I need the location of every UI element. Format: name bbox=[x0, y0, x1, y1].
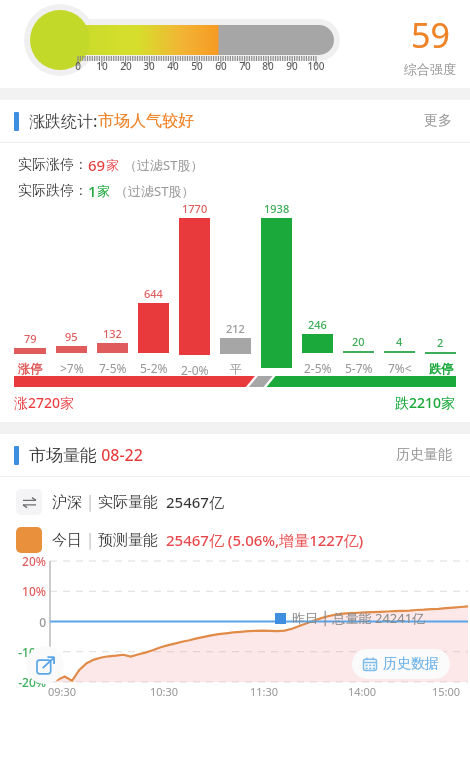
staticText: 08-22 bbox=[97, 444, 143, 466]
staticText: 25467亿 (5.06%,增量1227亿) bbox=[166, 530, 364, 550]
staticText: 历史数据 bbox=[383, 655, 439, 673]
staticText: 2-5% bbox=[304, 360, 332, 376]
staticText: 2-0% bbox=[181, 362, 209, 376]
staticText: 90 bbox=[281, 59, 303, 73]
staticText: 涨停 bbox=[18, 361, 42, 376]
staticText: 历史量能 bbox=[396, 446, 452, 464]
staticText: 1 bbox=[88, 181, 97, 201]
staticText: 100 bbox=[305, 59, 327, 73]
staticText: 79 bbox=[24, 331, 37, 346]
staticText: 家 bbox=[106, 157, 119, 173]
staticText: 涨跌统计: bbox=[29, 110, 98, 132]
staticText: │ bbox=[82, 531, 98, 550]
staticText: 昨日 │ 总量能 24241亿 bbox=[292, 609, 426, 627]
staticText: 综合强度 bbox=[404, 61, 456, 77]
staticText: （过滤ST股） bbox=[115, 182, 195, 200]
button[interactable]: 历史量能 bbox=[392, 442, 456, 468]
staticText: 60 bbox=[210, 59, 232, 73]
staticText: 1938 bbox=[264, 201, 290, 216]
staticText: 5-2% bbox=[140, 360, 168, 376]
staticText: 70 bbox=[234, 59, 256, 73]
staticText: 246 bbox=[308, 317, 327, 332]
staticText: 20% bbox=[2, 553, 46, 569]
button[interactable]: 历史数据 bbox=[352, 649, 450, 679]
staticText: 14:00 bbox=[348, 684, 377, 699]
staticText: 沪深 bbox=[52, 493, 82, 512]
staticText: 预测量能 bbox=[98, 531, 158, 550]
staticText: 平 bbox=[230, 361, 242, 376]
staticText: 0 bbox=[2, 614, 46, 630]
staticText: 今日 bbox=[52, 531, 82, 550]
staticText: 69 bbox=[88, 155, 106, 175]
staticText: 59 bbox=[411, 12, 450, 58]
staticText: 80 bbox=[257, 59, 279, 73]
staticText: 0 bbox=[67, 59, 89, 73]
staticText: 4 bbox=[396, 334, 403, 349]
button[interactable]: 切换市场 bbox=[16, 489, 42, 515]
staticText: 50 bbox=[186, 59, 208, 73]
staticText: 家 bbox=[97, 183, 110, 199]
staticText: 市场量能 bbox=[29, 445, 97, 466]
staticText: -10% bbox=[2, 644, 46, 660]
staticText: 10% bbox=[2, 583, 46, 599]
staticText: 09:30 bbox=[48, 684, 77, 699]
staticText: 实际量能 bbox=[98, 493, 158, 512]
button[interactable]: 分享 bbox=[26, 646, 64, 684]
staticText: 市场人气较好 bbox=[98, 111, 194, 131]
staticText: 7-5% bbox=[99, 360, 127, 376]
staticText: 644 bbox=[144, 286, 163, 301]
staticText: │ bbox=[82, 493, 98, 512]
staticText: 11:30 bbox=[250, 684, 279, 699]
staticText: 10:30 bbox=[150, 684, 179, 699]
staticText: 跌停 bbox=[429, 361, 453, 376]
staticText: 2 bbox=[437, 335, 444, 350]
staticText: （过滤ST股） bbox=[124, 156, 204, 174]
staticText: 1770 bbox=[182, 201, 208, 216]
staticText: 5-7% bbox=[345, 360, 373, 376]
staticText: 40 bbox=[162, 59, 184, 73]
staticText: 实际跌停： bbox=[18, 182, 88, 200]
staticText: 跌2210家 bbox=[395, 393, 456, 412]
staticText: 20 bbox=[115, 59, 137, 73]
staticText: 涨2720家 bbox=[14, 393, 75, 412]
staticText: 20 bbox=[352, 334, 365, 349]
staticText: -20% bbox=[2, 674, 46, 690]
staticText: 30 bbox=[138, 59, 160, 73]
button[interactable]: 更多 bbox=[420, 108, 456, 134]
staticText: 实际涨停： bbox=[18, 156, 88, 174]
staticText: 132 bbox=[103, 326, 122, 341]
staticText: 95 bbox=[65, 329, 78, 344]
staticText: 7%< bbox=[388, 360, 412, 376]
staticText: >7% bbox=[60, 360, 84, 376]
staticText: 25467亿 bbox=[166, 492, 224, 512]
staticText: 10 bbox=[91, 59, 113, 73]
staticText: 15:00 bbox=[432, 684, 461, 699]
staticText: 212 bbox=[226, 321, 245, 336]
staticText: 更多 bbox=[424, 112, 452, 130]
